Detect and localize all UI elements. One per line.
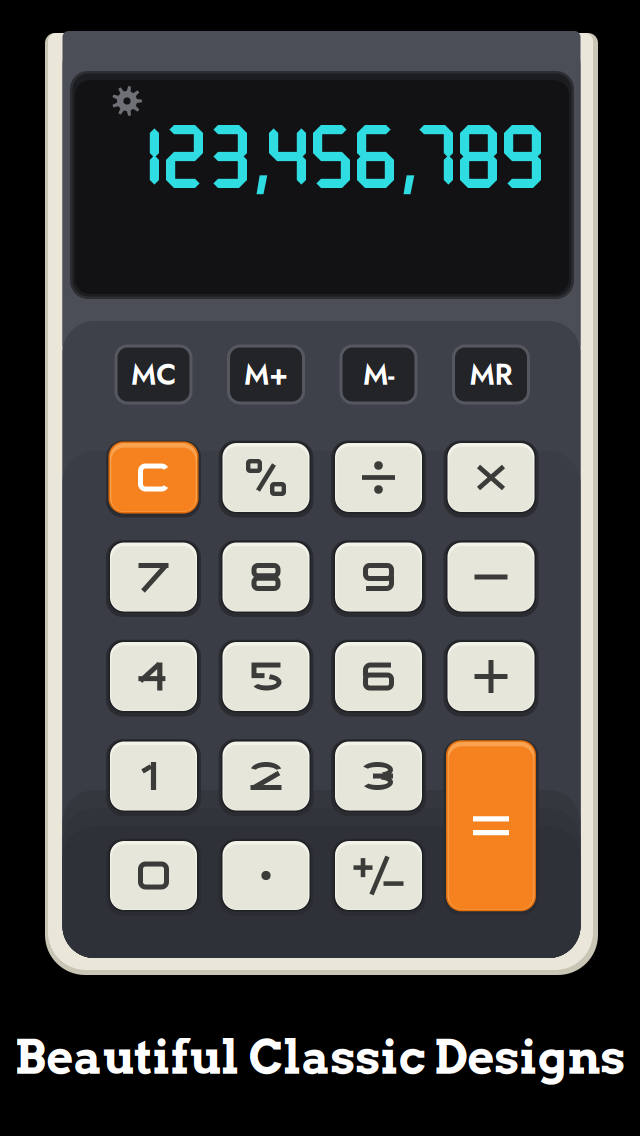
- button[interactable]: M-: [339, 344, 417, 404]
- staticText: Beautiful Classic Designs: [14, 1029, 625, 1085]
- button[interactable]: MC: [114, 344, 192, 404]
- button[interactable]: [106, 439, 201, 516]
- button[interactable]: [443, 738, 538, 914]
- button[interactable]: [106, 538, 201, 615]
- button[interactable]: [218, 439, 313, 516]
- button[interactable]: [443, 439, 538, 516]
- staticText: M-: [363, 353, 394, 396]
- button[interactable]: [443, 638, 538, 715]
- button[interactable]: [331, 538, 426, 615]
- staticText: M+: [244, 353, 288, 396]
- button[interactable]: [218, 837, 313, 914]
- button[interactable]: [331, 439, 426, 516]
- button[interactable]: [331, 737, 426, 814]
- button[interactable]: [106, 638, 201, 715]
- button[interactable]: M+: [227, 344, 305, 404]
- button[interactable]: [218, 538, 313, 615]
- button[interactable]: [106, 737, 201, 814]
- staticText: MR: [469, 353, 512, 396]
- button[interactable]: [218, 638, 313, 715]
- button[interactable]: Settings: [108, 82, 146, 120]
- button[interactable]: [106, 837, 201, 914]
- button[interactable]: [218, 737, 313, 814]
- staticText: MC: [131, 353, 176, 396]
- button[interactable]: [331, 638, 426, 715]
- button[interactable]: [443, 538, 538, 615]
- button[interactable]: [331, 837, 426, 914]
- button[interactable]: MR: [452, 344, 530, 404]
